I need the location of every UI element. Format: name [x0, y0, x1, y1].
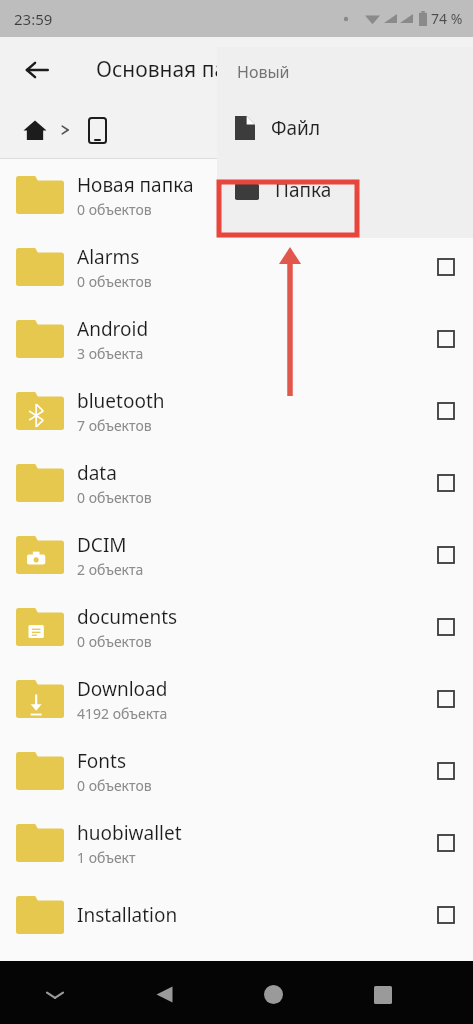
button[interactable]: DCIM — [0, 519, 473, 591]
button[interactable]: Hide — [0, 965, 110, 1024]
button[interactable]: data — [0, 447, 473, 519]
staticText: 0 объектов — [77, 272, 152, 291]
button[interactable]: Новая папка — [0, 159, 473, 231]
staticText: 7 объектов — [77, 416, 152, 435]
button[interactable]: Файл — [217, 97, 473, 159]
staticText: Android — [77, 316, 149, 342]
button[interactable]: Select — [423, 388, 469, 434]
staticText: 0 объектов — [77, 632, 152, 651]
staticText: data — [77, 460, 117, 486]
button[interactable]: Select — [423, 460, 469, 506]
staticText: 4192 объекта — [77, 704, 168, 723]
button[interactable]: Select — [423, 676, 469, 722]
staticText: Alarms — [77, 244, 140, 270]
staticText: 1 объект — [77, 848, 136, 867]
button[interactable]: Select — [423, 532, 469, 578]
staticText: 0 объектов — [77, 488, 152, 507]
button[interactable]: Home — [219, 965, 328, 1024]
button[interactable]: Android — [0, 303, 473, 375]
button[interactable]: Select — [423, 748, 469, 794]
button[interactable]: Home — [16, 111, 54, 149]
staticText: 2 объекта — [77, 560, 144, 579]
staticText: Fonts — [77, 748, 127, 774]
staticText: documents — [77, 604, 178, 630]
staticText: 0 объектов — [77, 776, 152, 795]
staticText: Основная память — [96, 55, 276, 84]
button[interactable]: Папка — [217, 159, 473, 221]
staticText: 23:59 — [14, 9, 53, 29]
button[interactable]: bluetooth — [0, 375, 473, 447]
staticText: Папка — [275, 177, 332, 203]
button[interactable]: huobiwallet — [0, 807, 473, 879]
button[interactable]: Select — [423, 244, 469, 290]
button[interactable]: Back — [110, 965, 219, 1024]
staticText: Новая папка — [77, 172, 194, 198]
button[interactable]: documents — [0, 591, 473, 663]
button[interactable]: Select — [423, 316, 469, 362]
button[interactable]: Back — [14, 47, 60, 93]
staticText: Installation — [77, 902, 178, 928]
button[interactable]: Recents — [328, 965, 437, 1024]
staticText: Download — [77, 676, 168, 702]
button[interactable]: Installation — [0, 879, 473, 951]
staticText: 0 объектов — [77, 200, 152, 219]
staticText: Файл — [271, 115, 321, 141]
button[interactable]: Fonts — [0, 735, 473, 807]
staticText: 74 % — [431, 9, 463, 28]
staticText: DCIM — [77, 532, 127, 558]
button[interactable]: Select — [423, 604, 469, 650]
button[interactable]: Alarms — [0, 231, 473, 303]
button[interactable]: Internal storage — [78, 111, 116, 149]
button[interactable]: Download — [0, 663, 473, 735]
button[interactable]: Select — [423, 892, 469, 938]
staticText: Новый — [237, 61, 290, 83]
staticText: huobiwallet — [77, 820, 182, 846]
staticText: 3 объекта — [77, 344, 144, 363]
button[interactable]: Select — [423, 820, 469, 866]
staticText: bluetooth — [77, 388, 165, 414]
